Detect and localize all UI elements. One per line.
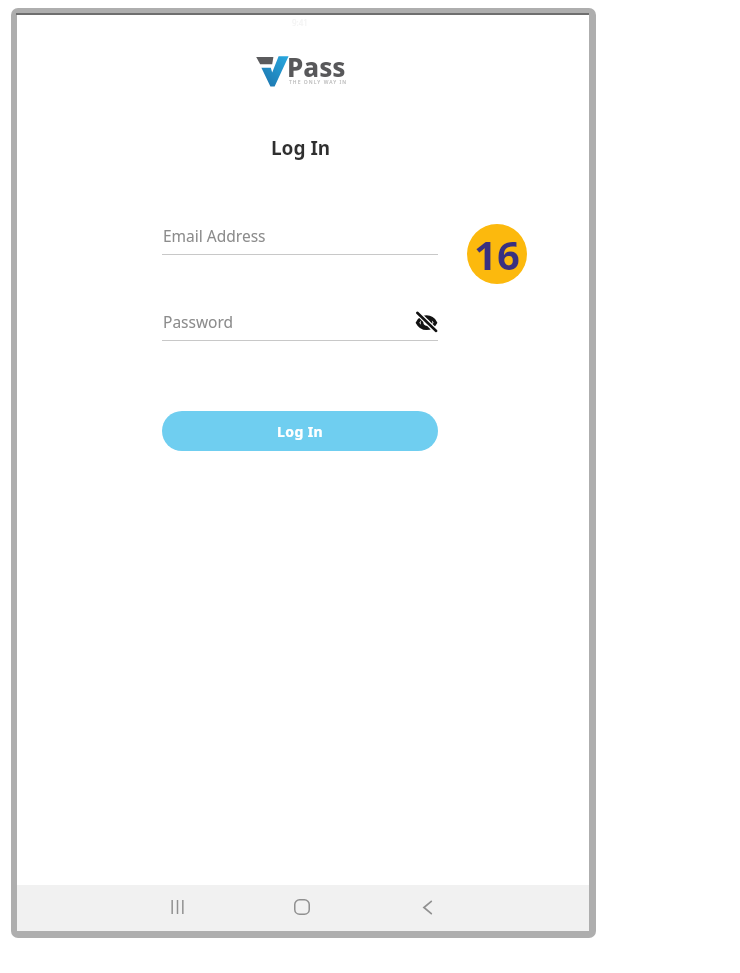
button[interactable]: Recents	[142, 885, 212, 931]
button[interactable]: Password	[162, 308, 438, 341]
button[interactable]: Show password	[411, 306, 441, 336]
button[interactable]: Email Address	[162, 222, 438, 255]
staticText: Pass	[287, 49, 346, 84]
button[interactable]: Log In	[162, 411, 438, 451]
staticText: Password	[163, 311, 234, 332]
staticText: Email Address	[163, 225, 266, 246]
staticText: 9:41	[292, 17, 308, 27]
button[interactable]: 16	[467, 224, 527, 284]
button[interactable]: Back	[392, 885, 462, 931]
staticText: Log In	[277, 422, 324, 441]
staticText: 16	[474, 227, 520, 281]
staticText: Log In	[271, 135, 331, 161]
button[interactable]: Home	[267, 885, 337, 931]
staticText: THE ONLY WAY IN	[289, 79, 348, 86]
